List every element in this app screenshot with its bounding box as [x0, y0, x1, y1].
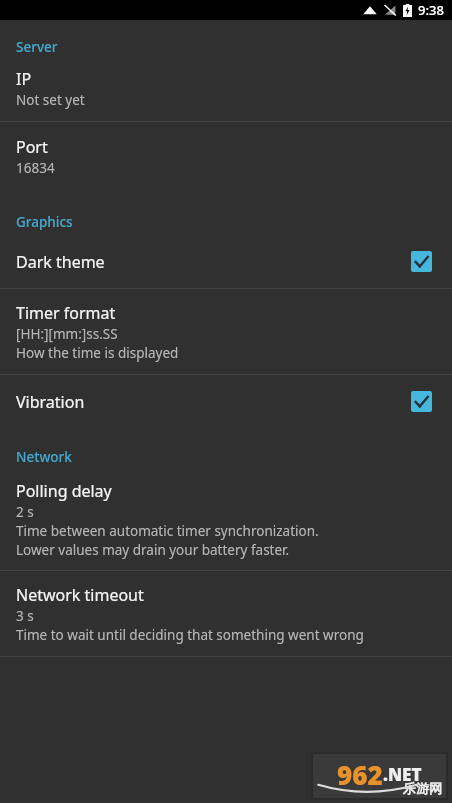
staticText: Time between automatic timer synchroniza…: [16, 522, 319, 540]
staticText: Timer format: [16, 302, 116, 324]
staticText: Port: [16, 136, 48, 158]
staticText: Time to wait until deciding that somethi…: [16, 626, 364, 644]
button[interactable]: Polling delay: [0, 469, 452, 570]
button[interactable]: Vibration: [407, 387, 436, 416]
staticText: 962: [337, 757, 383, 792]
staticText: 3 s: [16, 607, 34, 625]
staticText: [HH:][mm:]ss.SS: [16, 325, 118, 343]
staticText: Network: [16, 448, 72, 466]
staticText: IP: [16, 68, 32, 90]
button[interactable]: Timer format: [0, 289, 452, 374]
staticText: Network timeout: [16, 584, 144, 606]
staticText: Graphics: [16, 213, 73, 231]
button[interactable]: Dark theme: [0, 235, 452, 288]
staticText: Vibration: [16, 391, 85, 413]
staticText: Lower values may drain your battery fast…: [16, 541, 290, 559]
button[interactable]: Network timeout: [0, 571, 452, 656]
button[interactable]: Vibration: [0, 375, 452, 428]
staticText: Not set yet: [16, 91, 85, 109]
staticText: Dark theme: [16, 251, 105, 273]
staticText: .NET: [383, 763, 422, 786]
staticText: 9:38: [418, 1, 444, 19]
staticText: Polling delay: [16, 480, 112, 502]
staticText: How the time is displayed: [16, 344, 179, 362]
staticText: 乐游网: [403, 780, 442, 796]
staticText: 2 s: [16, 503, 34, 521]
staticText: 16834: [16, 159, 55, 177]
button[interactable]: Dark theme: [407, 247, 436, 276]
button[interactable]: IP: [0, 58, 452, 121]
staticText: Server: [16, 38, 58, 56]
button[interactable]: Port: [0, 122, 452, 191]
